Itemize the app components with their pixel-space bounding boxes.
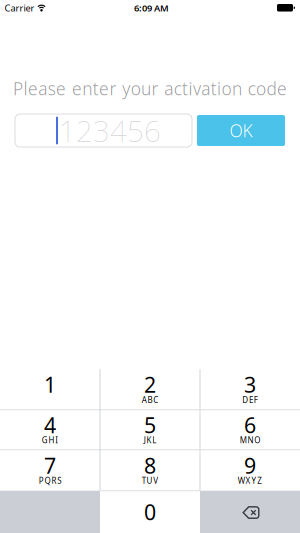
staticText: JKL bbox=[144, 435, 156, 445]
staticText: MNO bbox=[240, 435, 260, 445]
button[interactable]: 8 bbox=[100, 450, 200, 491]
staticText: 6:09 AM bbox=[134, 2, 169, 14]
button[interactable]: 3 bbox=[200, 369, 300, 410]
button[interactable]: 5 bbox=[100, 410, 200, 450]
staticText: ABC bbox=[142, 394, 158, 405]
button[interactable]: 0 bbox=[100, 491, 200, 533]
staticText: OK bbox=[229, 119, 252, 142]
staticText: 4 bbox=[44, 411, 56, 439]
staticText: 8 bbox=[144, 451, 156, 479]
button[interactable]: 2 bbox=[100, 369, 200, 410]
staticText: 3 bbox=[244, 370, 256, 399]
button[interactable]: 1 bbox=[0, 369, 100, 410]
staticText: 5 bbox=[144, 411, 156, 439]
button[interactable]: OK bbox=[197, 115, 285, 146]
staticText: DEF bbox=[242, 394, 258, 405]
staticText: 0 bbox=[144, 498, 156, 526]
staticText: Please enter your activation code bbox=[13, 77, 287, 100]
staticText: 6 bbox=[244, 411, 256, 439]
staticText: 7 bbox=[44, 451, 56, 479]
button[interactable]: 6 bbox=[200, 410, 300, 450]
staticText: PQRS bbox=[39, 475, 61, 486]
staticText: 2 bbox=[144, 370, 156, 399]
button[interactable]: Activation code entry bbox=[15, 114, 192, 147]
staticText: 9 bbox=[244, 451, 256, 479]
staticText: WXYZ bbox=[238, 475, 262, 486]
button[interactable]: 9 bbox=[200, 450, 300, 491]
staticText: 123456 bbox=[59, 111, 161, 150]
button[interactable]: Delete bbox=[200, 491, 300, 533]
staticText: 1 bbox=[44, 370, 56, 399]
button[interactable]: 4 bbox=[0, 410, 100, 450]
staticText: TUV bbox=[142, 475, 158, 486]
staticText: Carrier bbox=[4, 2, 34, 14]
staticText: GHI bbox=[42, 435, 58, 445]
button[interactable]: 7 bbox=[0, 450, 100, 491]
